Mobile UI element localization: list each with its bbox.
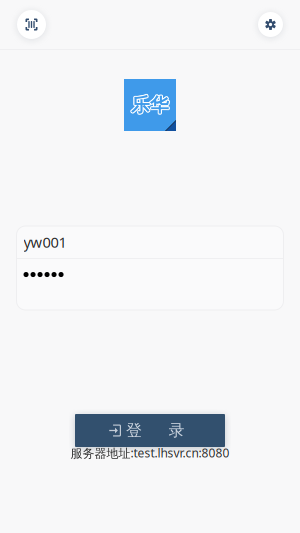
staticText: 乐华 [130, 94, 168, 117]
staticText: 登 [126, 421, 142, 440]
staticText: 乐华 [131, 94, 169, 117]
staticText: 乐华 [132, 94, 170, 117]
staticText: 乐华 [130, 93, 168, 116]
staticText: 乐华 [130, 93, 168, 116]
staticText: 乐华 [132, 93, 170, 116]
button[interactable]: 登 [75, 414, 225, 447]
staticText: 录 [168, 421, 184, 440]
staticText: yw001 [23, 232, 66, 252]
staticText: 乐华 [132, 93, 170, 116]
staticText: 乐华 [131, 93, 169, 116]
staticText: 服务器地址:test.lhsvr.cn:8080 [70, 445, 229, 461]
button[interactable]: Settings [258, 12, 283, 37]
staticText: 乐华 [131, 92, 169, 115]
button[interactable]: Scan barcode [17, 10, 46, 39]
